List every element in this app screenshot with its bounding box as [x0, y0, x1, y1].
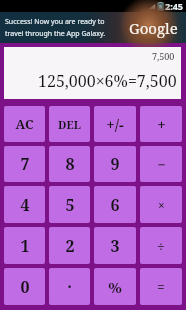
staticText: 7,500: [152, 50, 175, 62]
staticText: Success! Now you are ready to: [5, 17, 105, 27]
button[interactable]: ÷: [140, 227, 182, 264]
staticText: ÷: [157, 237, 165, 255]
staticText: %: [108, 277, 122, 297]
button[interactable]: AC: [4, 106, 45, 142]
button[interactable]: −: [140, 146, 182, 182]
button[interactable]: %: [94, 268, 136, 305]
button[interactable]: 9: [94, 146, 136, 182]
button[interactable]: Success! Now you are ready to: [0, 12, 186, 43]
button[interactable]: 6: [94, 186, 136, 223]
staticText: +: [157, 114, 166, 134]
staticText: −: [157, 155, 166, 174]
button[interactable]: 3: [94, 227, 136, 264]
staticText: +/-: [106, 114, 124, 134]
staticText: 6: [110, 194, 120, 216]
staticText: 1: [20, 235, 30, 257]
staticText: 2: [65, 235, 75, 257]
button[interactable]: 1: [4, 227, 45, 264]
button[interactable]: 2: [49, 227, 90, 264]
staticText: 4: [20, 194, 30, 216]
staticText: 8: [65, 153, 75, 175]
staticText: 5: [65, 194, 75, 216]
button[interactable]: 7: [4, 146, 45, 182]
staticText: ×: [158, 197, 165, 213]
staticText: 9: [110, 153, 120, 175]
button[interactable]: 5: [49, 186, 90, 223]
button[interactable]: +/-: [94, 106, 136, 142]
staticText: 3: [110, 235, 120, 257]
button[interactable]: +: [140, 106, 182, 142]
staticText: AC: [15, 115, 34, 133]
staticText: DEL: [58, 117, 81, 132]
staticText: travel through the App Galaxy.: [5, 29, 106, 39]
button[interactable]: 0: [4, 268, 45, 305]
staticText: 2:45: [165, 0, 183, 12]
staticText: 0: [20, 276, 30, 298]
button[interactable]: 4: [4, 186, 45, 223]
button[interactable]: =: [140, 268, 182, 305]
staticText: 7: [20, 153, 30, 175]
staticText: 125,000×6%=7,500: [38, 70, 177, 92]
button[interactable]: ·: [49, 268, 90, 305]
button[interactable]: DEL: [49, 106, 90, 142]
staticText: ·: [67, 276, 72, 298]
button[interactable]: ×: [140, 186, 182, 223]
button[interactable]: 8: [49, 146, 90, 182]
staticText: Google: [129, 18, 178, 38]
staticText: =: [157, 278, 165, 296]
